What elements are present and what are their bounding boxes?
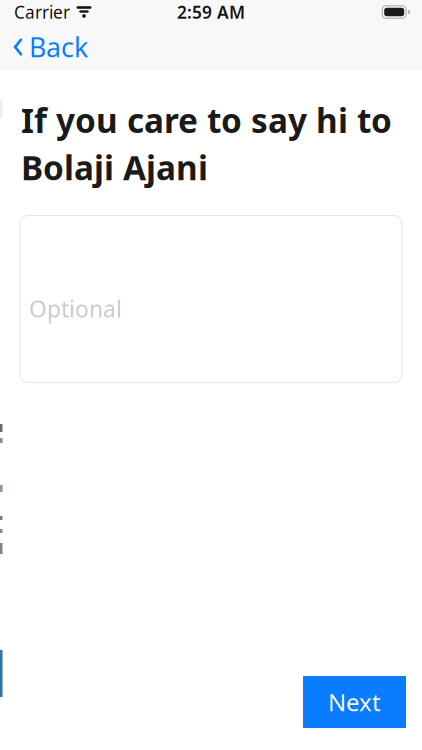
staticText: Bolaji Ajani bbox=[21, 145, 208, 190]
staticText: Optional bbox=[29, 293, 122, 324]
staticText: Back bbox=[29, 29, 88, 65]
staticText: Next bbox=[328, 686, 381, 718]
staticText: If you care to say hi to bbox=[21, 98, 392, 142]
staticText: 2:59 AM bbox=[177, 0, 245, 23]
button[interactable]: Optional bbox=[20, 215, 402, 382]
staticText: Carrier bbox=[14, 0, 70, 23]
button[interactable]: Back bbox=[0, 21, 98, 73]
button[interactable]: Next bbox=[303, 676, 406, 728]
